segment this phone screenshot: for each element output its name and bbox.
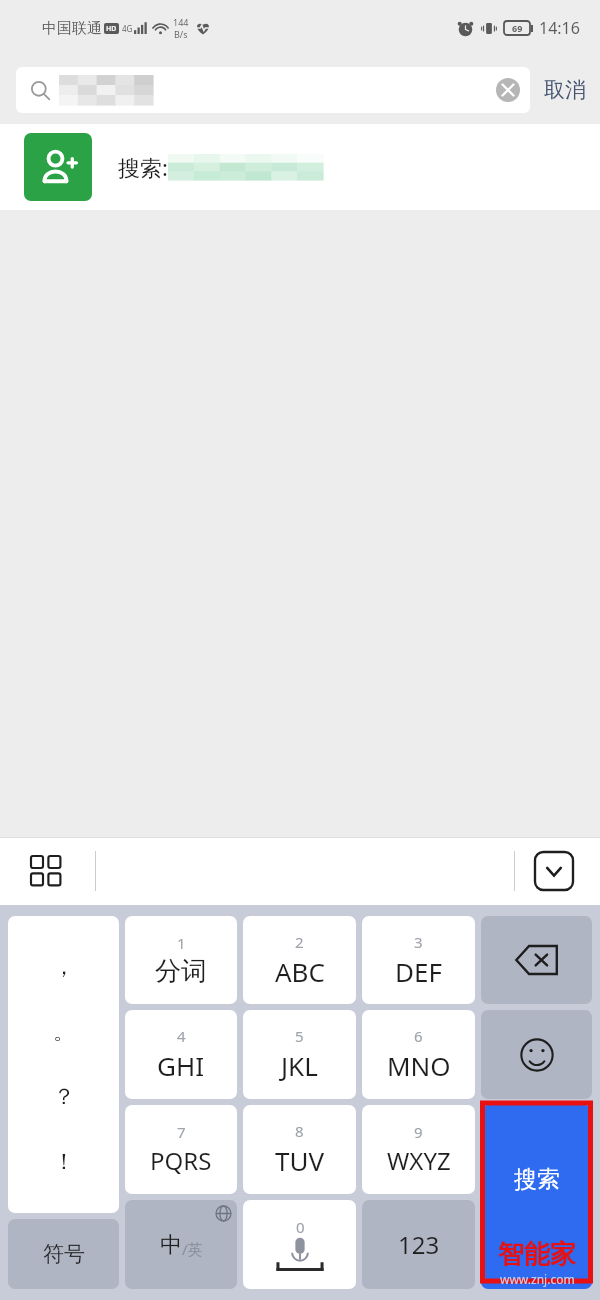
button[interactable]: 搜索 [481, 1105, 592, 1289]
button[interactable]: Clear [16, 67, 530, 113]
staticText: /英 [182, 1239, 203, 1259]
staticText: ？ [53, 1083, 75, 1111]
staticText: 4G [122, 23, 133, 34]
staticText: www.znj.com [500, 1271, 575, 1287]
button[interactable]: 8 [243, 1105, 356, 1194]
staticText: ！ [53, 1148, 75, 1176]
staticText: ABC [275, 954, 325, 989]
staticText: 取消 [544, 77, 586, 103]
staticText: WXYZ [387, 1144, 451, 1177]
staticText: 符号 [43, 1241, 85, 1267]
staticText: JKL [281, 1048, 318, 1083]
staticText: ， [53, 953, 75, 981]
staticText: 3 [414, 932, 423, 952]
staticText: 123 [398, 1228, 440, 1261]
button[interactable]: 2 [243, 916, 356, 1004]
button[interactable]: Delete [481, 916, 592, 1004]
staticText: 9 [414, 1122, 423, 1142]
staticText: 中 [160, 1231, 182, 1259]
button[interactable]: 取消 [544, 77, 586, 103]
staticText: 69 [512, 22, 523, 34]
staticText: 搜索: [118, 152, 168, 182]
button[interactable]: 搜索: [0, 124, 600, 210]
staticText: 14:16 [539, 17, 580, 39]
staticText: GHI [157, 1048, 205, 1083]
button[interactable]: Emoji [481, 1010, 592, 1099]
staticText: 7 [177, 1122, 186, 1142]
staticText: 8 [295, 1121, 304, 1141]
button[interactable]: 符号 [8, 1219, 119, 1289]
button[interactable]: 6 [362, 1010, 475, 1099]
staticText: 分词 [155, 955, 207, 988]
staticText: 4 [177, 1026, 186, 1046]
button[interactable]: 9 [362, 1105, 475, 1194]
staticText: 1 [177, 933, 186, 953]
staticText: 搜索 [514, 1165, 560, 1194]
button[interactable]: 7 [125, 1105, 237, 1194]
staticText: DEF [395, 954, 442, 989]
staticText: 0 [296, 1217, 305, 1237]
button[interactable]: Space [243, 1200, 356, 1289]
button[interactable]: Clear [488, 70, 528, 110]
staticText: 2 [295, 932, 304, 952]
staticText: TUV [275, 1143, 325, 1178]
staticText: 144 [173, 16, 189, 28]
staticText: 中国联通 [42, 19, 102, 38]
button[interactable]: 123 [362, 1200, 475, 1289]
button[interactable]: 3 [362, 916, 475, 1004]
staticText: PQRS [150, 1144, 212, 1177]
staticText: 智能家 [498, 1238, 576, 1271]
button[interactable]: 1 [125, 916, 237, 1004]
button[interactable]: 中 [125, 1200, 237, 1289]
button[interactable]: Keyboard layouts [22, 847, 70, 895]
staticText: MNO [387, 1048, 451, 1083]
staticText: 6 [414, 1026, 423, 1046]
button[interactable]: 4 [125, 1010, 237, 1099]
button[interactable]: ， [8, 916, 119, 1213]
button[interactable]: 5 [243, 1010, 356, 1099]
staticText: 5 [295, 1026, 304, 1046]
staticText: 。 [53, 1018, 75, 1046]
staticText: HD [106, 24, 117, 34]
button[interactable]: Hide keyboard [533, 850, 575, 892]
staticText: B/s [174, 28, 188, 40]
